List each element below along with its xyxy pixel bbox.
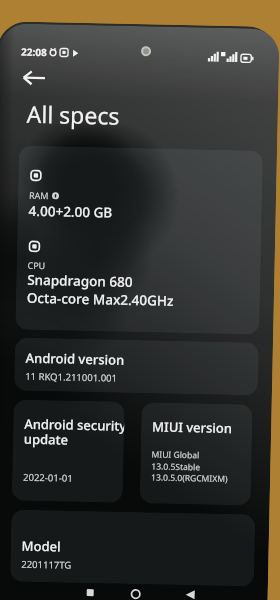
button[interactable]: RAM: [15, 146, 263, 335]
button[interactable]: Recents: [82, 584, 98, 600]
staticText: Android security update: [24, 415, 124, 450]
button[interactable]: Android security update: [12, 399, 125, 503]
button[interactable]: Back: [181, 586, 198, 600]
button[interactable]: Home: [126, 585, 145, 600]
staticText: 2022-01-01: [23, 471, 73, 485]
staticText: 22:08: [21, 45, 47, 59]
staticText: 11 RKQ1.211001.001: [25, 370, 117, 385]
staticText: Octa-core Max2.40GHz: [27, 289, 174, 310]
staticText: All specs: [26, 98, 120, 131]
staticText: Android version: [25, 349, 125, 369]
button[interactable]: Model: [10, 509, 255, 587]
button[interactable]: Android version: [14, 337, 259, 396]
staticText: CPU: [27, 259, 46, 271]
staticText: Model: [21, 537, 61, 555]
button[interactable]: MIUI version: [140, 402, 253, 505]
button[interactable]: Back: [11, 55, 56, 100]
staticText: Snapdragon 680: [27, 271, 133, 291]
staticText: RAM: [29, 189, 49, 201]
staticText: 2201117TG: [21, 558, 72, 572]
staticText: MIUI Global 13.0.5Stable 13.0.5.0(RGCMIX…: [151, 448, 229, 484]
staticText: MIUI version: [152, 417, 232, 437]
staticText: 4.00+2.00 GB: [28, 202, 113, 222]
